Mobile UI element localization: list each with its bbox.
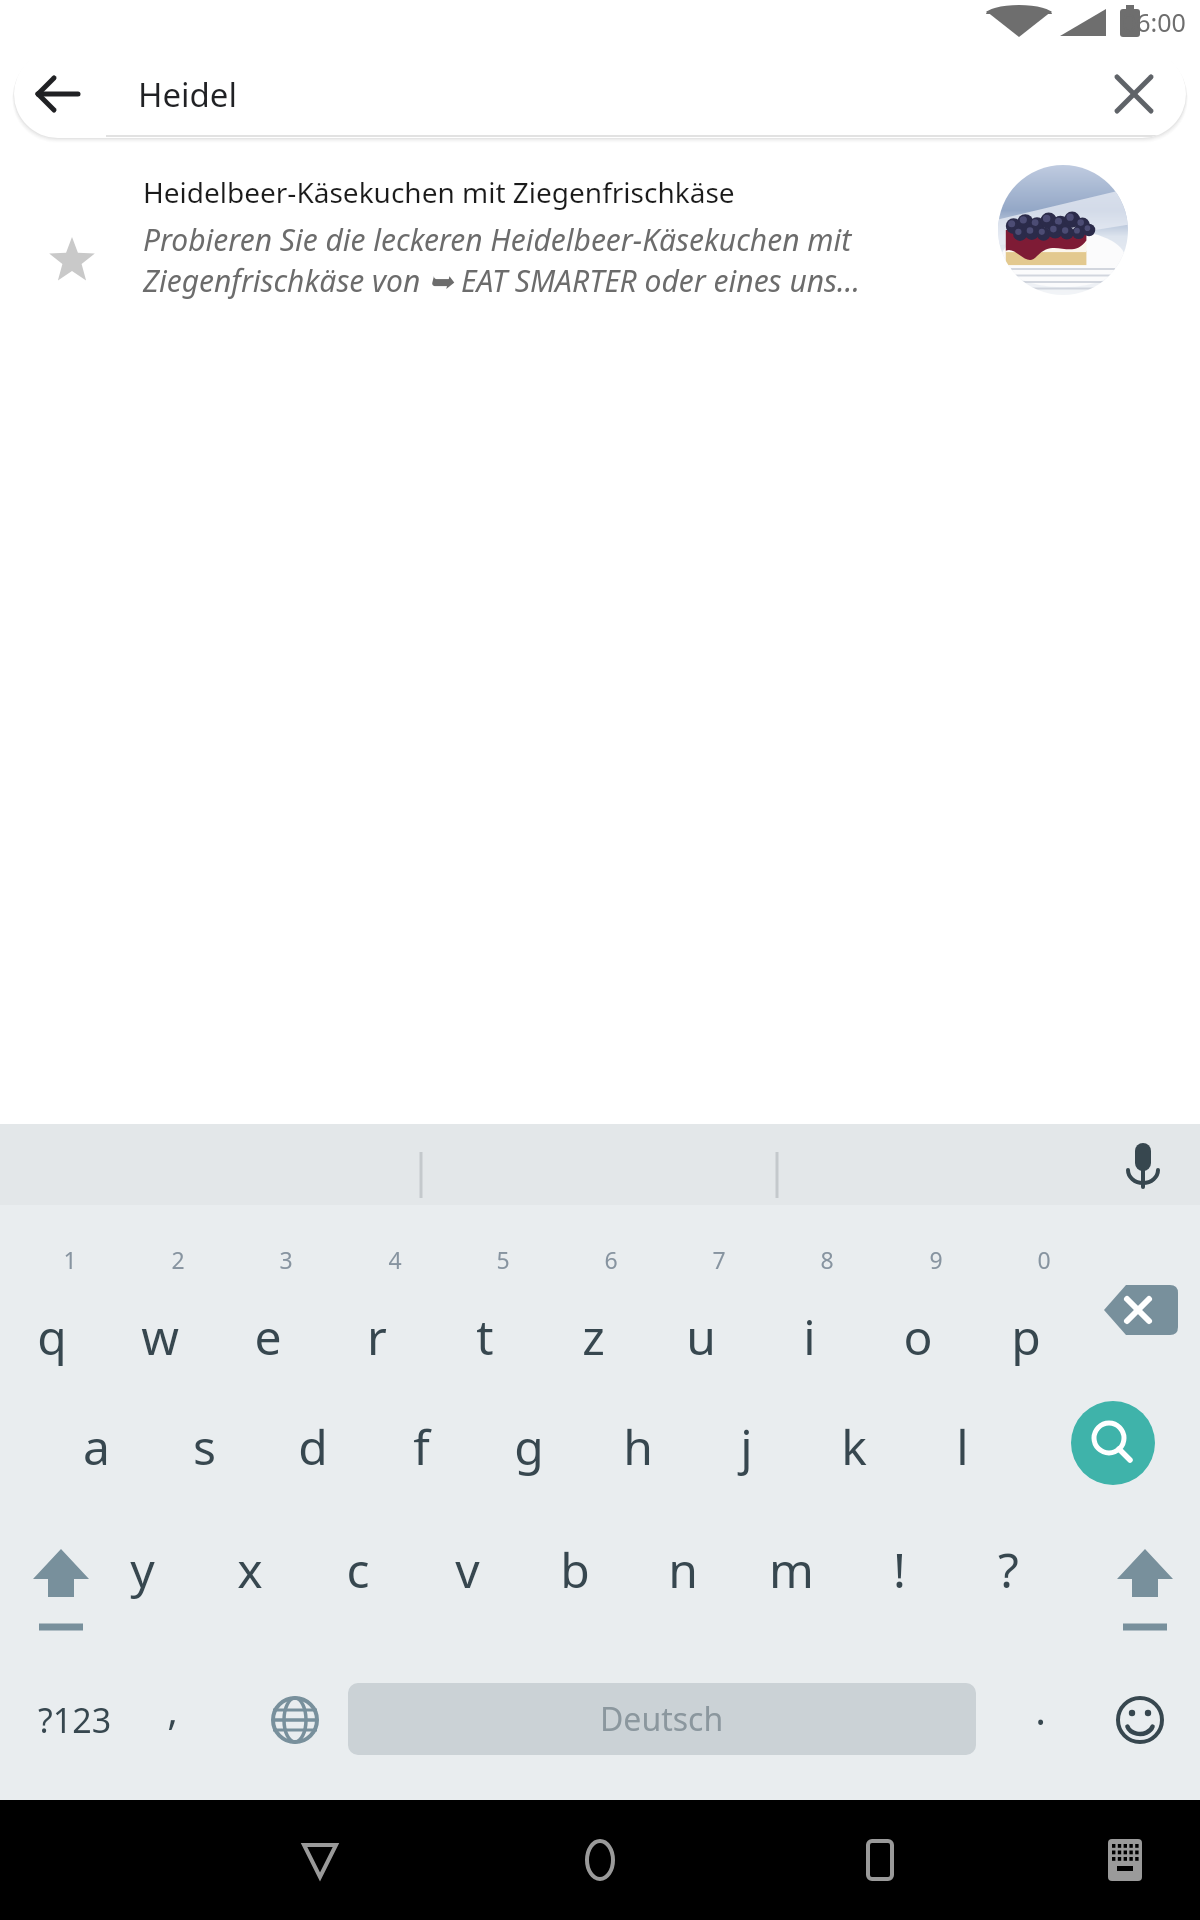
button[interactable]: Backspace <box>1085 1240 1195 1370</box>
button[interactable]: Back <box>22 58 94 130</box>
staticText: g <box>514 1414 544 1479</box>
button[interactable]: Heidelbeer-Käsekuchen mit Ziegenfrischkä… <box>0 155 1200 295</box>
staticText: i <box>803 1304 816 1369</box>
button[interactable]: Clear query <box>1098 58 1170 130</box>
staticText: 5 <box>496 1244 510 1275</box>
staticText: ? <box>998 1537 1019 1602</box>
button[interactable]: q <box>0 1282 106 1390</box>
button[interactable]: r <box>323 1282 431 1390</box>
staticText: 0 <box>1037 1244 1051 1275</box>
button[interactable]: Home <box>565 1825 635 1895</box>
staticText: . <box>1035 1682 1046 1736</box>
button[interactable]: p <box>972 1282 1080 1390</box>
button[interactable]: Voice input <box>1106 1128 1180 1202</box>
staticText: m <box>769 1537 814 1602</box>
button[interactable]: Back <box>285 1825 355 1895</box>
button[interactable]: 9 <box>882 1205 990 1313</box>
button[interactable]: Shift <box>1090 1523 1200 1653</box>
button[interactable]: t <box>431 1282 539 1390</box>
button[interactable]: a <box>42 1392 150 1500</box>
staticText: 4 <box>388 1244 402 1275</box>
button[interactable]: z <box>539 1282 647 1390</box>
button[interactable]: u <box>647 1282 755 1390</box>
staticText: u <box>686 1304 716 1369</box>
staticText: y <box>130 1537 155 1602</box>
button[interactable]: Emoji <box>1085 1660 1195 1780</box>
button[interactable]: 6 <box>557 1205 665 1313</box>
button[interactable]: m <box>737 1515 845 1623</box>
button[interactable]: k <box>800 1392 908 1500</box>
button[interactable]: 5 <box>449 1205 557 1313</box>
staticText: 8 <box>820 1244 834 1275</box>
button[interactable]: x <box>196 1515 304 1623</box>
staticText: Probieren Sie die leckeren Heidelbeer-Kä… <box>143 219 861 301</box>
button[interactable]: i <box>755 1282 863 1390</box>
button[interactable]: 3 <box>232 1205 340 1313</box>
staticText: d <box>298 1414 328 1479</box>
staticText: 6 <box>604 1244 618 1275</box>
staticText: v <box>455 1537 480 1602</box>
staticText: j <box>740 1414 753 1479</box>
staticText: s <box>193 1414 216 1479</box>
staticText: c <box>346 1537 370 1602</box>
button[interactable]: Change language <box>240 1660 350 1780</box>
staticText: x <box>237 1537 263 1602</box>
button[interactable]: j <box>692 1392 800 1500</box>
button[interactable]: d <box>259 1392 367 1500</box>
staticText: 9 <box>929 1244 943 1275</box>
staticText: b <box>560 1537 590 1602</box>
button[interactable]: g <box>475 1392 583 1500</box>
staticText: a <box>83 1414 110 1479</box>
staticText: p <box>1011 1304 1041 1369</box>
staticText: n <box>668 1537 698 1602</box>
button[interactable]: n <box>629 1515 737 1623</box>
button[interactable]: y <box>88 1515 196 1623</box>
staticText: 3 <box>279 1244 293 1275</box>
staticText: 06:00 <box>1122 5 1186 39</box>
button[interactable]: ! <box>845 1515 953 1623</box>
button[interactable]: 1 <box>16 1205 124 1313</box>
staticText: e <box>254 1304 282 1369</box>
staticText: z <box>582 1304 605 1369</box>
button[interactable]: , <box>118 1655 226 1763</box>
button[interactable]: c <box>304 1515 412 1623</box>
staticText: w <box>141 1304 179 1369</box>
staticText: , <box>167 1682 178 1736</box>
staticText: Heidel <box>138 72 237 117</box>
button[interactable]: . <box>986 1655 1094 1763</box>
staticText: f <box>413 1414 430 1479</box>
staticText: ! <box>893 1537 906 1602</box>
button[interactable]: v <box>413 1515 521 1623</box>
staticText: t <box>476 1304 494 1369</box>
staticText: Deutsch <box>600 1697 724 1741</box>
button[interactable]: Search <box>1071 1401 1155 1485</box>
button[interactable]: 0 <box>990 1205 1098 1313</box>
button[interactable]: b <box>521 1515 629 1623</box>
staticText: 1 <box>63 1244 77 1275</box>
staticText: l <box>956 1414 969 1479</box>
staticText: r <box>367 1304 387 1369</box>
button[interactable]: ? <box>954 1515 1062 1623</box>
button[interactable]: ?123 <box>0 1660 150 1780</box>
button[interactable]: e <box>214 1282 322 1390</box>
button[interactable]: Recent apps <box>845 1825 915 1895</box>
button[interactable]: l <box>908 1392 1016 1500</box>
button[interactable]: Switch keyboard <box>1090 1825 1160 1895</box>
button[interactable]: 7 <box>665 1205 773 1313</box>
button[interactable]: 4 <box>341 1205 449 1313</box>
button[interactable]: 2 <box>124 1205 232 1313</box>
button[interactable]: Shift <box>6 1523 116 1653</box>
button[interactable]: 8 <box>773 1205 881 1313</box>
button[interactable]: o <box>864 1282 972 1390</box>
button[interactable]: w <box>106 1282 214 1390</box>
button[interactable]: h <box>584 1392 692 1500</box>
staticText: ?123 <box>38 1697 112 1743</box>
button[interactable]: s <box>150 1392 258 1500</box>
staticText: 7 <box>712 1244 726 1275</box>
staticText: h <box>623 1414 653 1479</box>
button[interactable]: f <box>367 1392 475 1500</box>
staticText: q <box>37 1304 67 1369</box>
button[interactable]: Deutsch <box>348 1683 976 1755</box>
staticText: Heidelbeer-Käsekuchen mit Ziegenfrischkä… <box>143 173 735 211</box>
staticText: 2 <box>171 1244 185 1275</box>
